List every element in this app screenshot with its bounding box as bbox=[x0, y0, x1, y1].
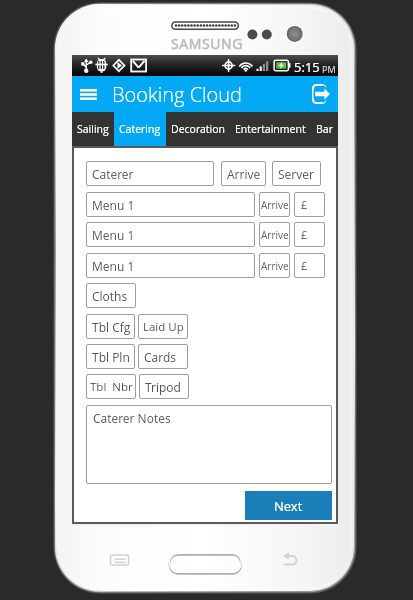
staticText: Decoration bbox=[171, 122, 225, 136]
staticText: Laid Up bbox=[143, 319, 184, 335]
button[interactable]: Menu 1 bbox=[86, 192, 255, 217]
button[interactable]: Next bbox=[245, 491, 332, 520]
staticText: Cards bbox=[144, 349, 176, 365]
button[interactable]: Sailing bbox=[72, 112, 114, 146]
staticText: Next bbox=[274, 497, 303, 515]
button[interactable]: Arrive bbox=[221, 161, 266, 186]
button[interactable]: Decoration bbox=[166, 112, 230, 146]
button[interactable]: Menu bbox=[72, 76, 104, 112]
staticText: Arrive bbox=[261, 259, 289, 273]
staticText: SAMSUNG bbox=[171, 34, 244, 53]
staticText: Menu 1 bbox=[92, 258, 135, 274]
button[interactable]: Arrive bbox=[259, 253, 290, 278]
button[interactable]: Laid Up bbox=[138, 314, 188, 339]
button[interactable]: Catering bbox=[114, 112, 166, 146]
staticText: Sailing bbox=[77, 122, 109, 136]
staticText: PM bbox=[322, 63, 336, 75]
button[interactable]: £ bbox=[294, 253, 325, 278]
button[interactable]: Tripod bbox=[139, 374, 189, 399]
staticText: Entertainment bbox=[235, 122, 306, 136]
staticText: Arrive bbox=[227, 166, 261, 182]
staticText: Caterer Notes bbox=[93, 410, 171, 426]
staticText: £ bbox=[301, 227, 308, 242]
staticText: 5:15 bbox=[294, 58, 320, 76]
staticText: Arrive bbox=[261, 198, 289, 212]
button[interactable]: Log out bbox=[304, 76, 338, 112]
staticText: Bar bbox=[316, 122, 333, 136]
staticText: £ bbox=[301, 197, 308, 212]
staticText: Menu 1 bbox=[92, 227, 135, 243]
staticText: Tbl Pln bbox=[92, 349, 130, 365]
staticText: Server bbox=[278, 166, 314, 182]
button[interactable]: Arrive bbox=[259, 222, 290, 247]
button[interactable]: £ bbox=[294, 222, 325, 247]
button[interactable]: Tbl Pln bbox=[86, 344, 135, 369]
button[interactable]: Menu 1 bbox=[86, 253, 255, 278]
button[interactable]: Menu 1 bbox=[86, 222, 255, 247]
button[interactable]: Caterer bbox=[86, 161, 214, 186]
staticText: Arrive bbox=[261, 228, 289, 242]
button[interactable]: Tbl Nbr bbox=[86, 374, 136, 399]
staticText: Menu 1 bbox=[92, 197, 135, 213]
button[interactable]: Cloths bbox=[86, 283, 136, 308]
button[interactable]: Tbl Cfg bbox=[86, 314, 135, 339]
button[interactable]: Bar bbox=[311, 112, 338, 146]
staticText: Cloths bbox=[92, 288, 128, 304]
staticText: Tbl Cfg bbox=[92, 319, 131, 335]
staticText: £ bbox=[301, 258, 308, 273]
button[interactable]: Cards bbox=[138, 344, 188, 369]
button[interactable]: Caterer Notes bbox=[86, 405, 332, 484]
staticText: Booking Cloud bbox=[112, 81, 242, 108]
button[interactable]: Server bbox=[272, 161, 321, 186]
button[interactable]: Arrive bbox=[259, 192, 290, 217]
staticText: Caterer bbox=[92, 166, 134, 182]
button[interactable]: £ bbox=[294, 192, 325, 217]
staticText: Tripod bbox=[145, 379, 181, 395]
staticText: Tbl Nbr bbox=[90, 379, 133, 395]
button[interactable]: Entertainment bbox=[230, 112, 311, 146]
staticText: Catering bbox=[119, 122, 161, 136]
